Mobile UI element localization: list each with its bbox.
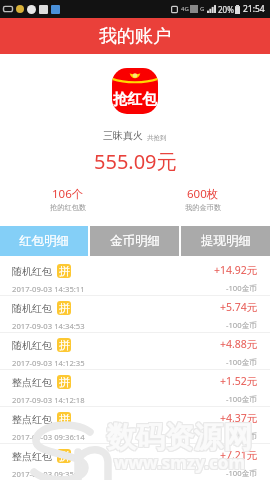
staticText: 数码资源网: [108, 418, 253, 455]
staticText: +14.92元: [214, 263, 258, 277]
staticText: www.smzy.com: [115, 452, 247, 475]
staticText: +5.74元: [220, 300, 258, 314]
staticText: 我的账户: [99, 25, 171, 48]
staticText: www.smzy.com: [115, 451, 247, 474]
staticText: www.smzy.com: [113, 451, 245, 474]
button[interactable]: 106个: [0, 186, 135, 212]
staticText: 2017-09-03 14:12:18: [12, 395, 85, 405]
staticText: 555.09元: [94, 148, 177, 175]
staticText: 数码资源网: [108, 420, 253, 457]
button[interactable]: 整点红包: [0, 444, 270, 480]
staticText: 红包明细: [19, 233, 69, 249]
staticText: +4.88元: [220, 337, 258, 351]
staticText: 随机红包: [12, 302, 52, 315]
staticText: +7.21元: [220, 448, 258, 462]
staticText: 拼: [59, 449, 70, 463]
staticText: 拼: [59, 375, 70, 389]
button[interactable]: 随机红包: [0, 259, 270, 296]
staticText: 数码资源网: [106, 420, 251, 457]
staticText: 数码资源网: [107, 419, 252, 456]
button[interactable]: 金币明细: [90, 226, 179, 256]
staticText: +1.52元: [220, 374, 258, 388]
staticText: 我的金币数: [185, 203, 221, 212]
staticText: 拼: [59, 301, 70, 315]
staticText: 2017-09-03 09:35:55: [12, 469, 85, 479]
staticText: 4G: [181, 5, 189, 13]
staticText: -100金币: [226, 320, 258, 331]
button[interactable]: 整点红包: [0, 370, 270, 407]
staticText: 拼: [59, 412, 70, 426]
staticText: 21:54: [243, 3, 265, 15]
button[interactable]: 600枚: [135, 186, 270, 212]
staticText: -100金币: [226, 394, 258, 405]
staticText: 提现明细: [201, 233, 251, 249]
staticText: 金币明细: [110, 233, 160, 249]
staticText: 整点红包: [12, 413, 52, 426]
staticText: www.smzy.com: [113, 450, 245, 473]
staticText: 2017-09-03 09:36:14: [12, 432, 85, 442]
staticText: 抢红包: [113, 90, 157, 108]
staticText: 抢的红包数: [50, 203, 86, 212]
staticText: 106个: [52, 186, 84, 202]
staticText: www.smzy.com: [114, 450, 246, 473]
staticText: 拼: [59, 264, 70, 278]
staticText: 整点红包: [12, 376, 52, 389]
button[interactable]: 整点红包: [0, 407, 270, 444]
button[interactable]: 提现明细: [181, 226, 270, 256]
staticText: www.smzy.com: [114, 451, 246, 474]
staticText: +4.37元: [220, 411, 258, 425]
staticText: www.smzy.com: [113, 452, 245, 475]
staticText: G: [200, 5, 205, 13]
staticText: -100金币: [226, 431, 258, 442]
staticText: 数码资源网: [107, 418, 252, 455]
staticText: 数码资源网: [107, 420, 252, 457]
staticText: 三昧真火: [103, 129, 143, 142]
staticText: 数码资源网: [108, 419, 253, 456]
staticText: www.smzy.com: [115, 450, 247, 473]
staticText: 随机红包: [12, 339, 52, 352]
button[interactable]: 我的账户: [0, 18, 270, 54]
staticText: -100金币: [226, 283, 258, 294]
staticText: www.smzy.com: [114, 452, 246, 475]
button[interactable]: 随机红包: [0, 296, 270, 333]
staticText: 20%: [218, 4, 234, 15]
staticText: 整点红包: [12, 450, 52, 463]
staticText: 2017-09-03 14:35:11: [12, 284, 85, 294]
staticText: 共抢到: [147, 134, 167, 142]
staticText: 拼: [59, 338, 70, 352]
staticText: 数码资源网: [106, 419, 251, 456]
staticText: 数码资源网: [106, 418, 251, 455]
staticText: 2017-09-03 14:34:53: [12, 321, 85, 331]
staticText: -100金币: [226, 468, 258, 479]
button[interactable]: 随机红包: [0, 333, 270, 370]
staticText: 2017-09-03 14:12:35: [12, 358, 85, 368]
button[interactable]: 红包明细: [0, 226, 88, 256]
staticText: 600枚: [187, 186, 219, 202]
staticText: -100金币: [226, 357, 258, 368]
staticText: 随机红包: [12, 265, 52, 278]
